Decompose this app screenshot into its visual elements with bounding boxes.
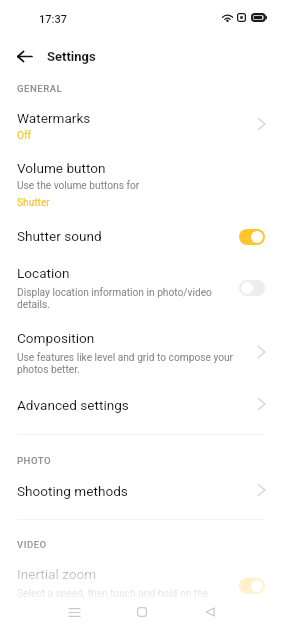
staticText: Volume button (17, 160, 106, 176)
staticText: Watermarks (17, 110, 91, 126)
staticText: Advanced settings (17, 397, 129, 413)
button[interactable] (0, 154, 284, 212)
button[interactable]: Recent apps (56, 595, 92, 629)
button[interactable]: Back (6, 42, 42, 70)
button[interactable] (0, 323, 284, 381)
button[interactable] (0, 220, 284, 256)
staticText: VIDEO (17, 539, 47, 550)
button[interactable]: Toggle (239, 578, 265, 594)
staticText: Location (17, 265, 70, 281)
button[interactable] (0, 389, 284, 421)
button[interactable] (0, 104, 284, 146)
staticText: Select a speed, then touch and hold on t… (17, 588, 209, 600)
button[interactable] (0, 475, 284, 507)
button[interactable]: Toggle (239, 280, 265, 296)
button[interactable]: Home (124, 595, 160, 629)
staticText: Inertial zoom (17, 566, 97, 582)
staticText: Use the volume buttons for (17, 180, 140, 192)
staticText: Off (17, 130, 32, 142)
button[interactable]: Toggle (239, 229, 265, 245)
button[interactable] (0, 258, 284, 316)
button[interactable]: Back (192, 595, 228, 629)
staticText: Use features like level and grid to comp… (17, 352, 234, 364)
staticText: PHOTO (17, 455, 52, 466)
staticText: Shutter sound (17, 228, 102, 244)
staticText: Composition (17, 330, 95, 346)
button[interactable] (0, 559, 284, 600)
staticText: Shutter (17, 197, 50, 209)
staticText: 17:37 (39, 13, 67, 26)
staticText: Display location information in photo/vi… (17, 287, 212, 299)
staticText: Shooting methods (17, 483, 128, 499)
staticText: GENERAL (17, 83, 63, 94)
staticText: Settings (47, 49, 96, 64)
staticText: details. (17, 299, 50, 311)
staticText: photos better. (17, 364, 80, 376)
